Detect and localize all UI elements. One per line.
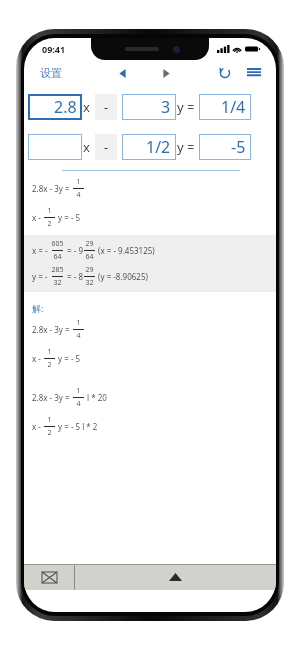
staticText: 09:41 <box>42 43 66 55</box>
staticText: 4 <box>76 399 81 409</box>
staticText: = <box>187 98 195 116</box>
staticText: 2 <box>47 428 52 438</box>
staticText: x - <box>32 421 43 432</box>
staticText: y <box>177 98 184 116</box>
staticText: 2.8x - 3y = <box>32 392 72 403</box>
staticText: 2.8x - 3y = <box>32 324 72 335</box>
button[interactable]: Undo <box>216 64 234 82</box>
staticText: 解: <box>32 302 44 314</box>
staticText: 4 <box>76 331 81 341</box>
staticText: 285 <box>51 265 64 275</box>
staticText: 2 <box>47 219 52 229</box>
staticText: = - 8 <box>65 271 83 282</box>
staticText: y = - <box>32 271 50 282</box>
staticText: 64 <box>53 252 62 262</box>
button[interactable]: Menu <box>244 63 264 83</box>
button[interactable]: 3 <box>122 94 176 120</box>
staticText: 2.8x - 3y = <box>32 183 72 194</box>
staticText: - <box>104 99 108 115</box>
staticText: x = - <box>32 245 50 256</box>
staticText: 2.8 <box>54 96 77 118</box>
staticText: -5 <box>231 136 246 158</box>
staticText: x - <box>32 212 43 223</box>
staticText: x <box>83 138 90 156</box>
button[interactable] <box>28 134 82 160</box>
staticText: 32 <box>53 278 62 288</box>
staticText: 1 <box>47 206 52 216</box>
button[interactable]: Previous <box>113 64 131 82</box>
button[interactable]: Next <box>157 64 175 82</box>
staticText: 4 <box>76 190 81 200</box>
staticText: 1 <box>76 386 81 396</box>
button[interactable]: -5 <box>199 134 251 160</box>
staticText: l * 20 <box>85 392 107 403</box>
staticText: = <box>187 138 195 156</box>
staticText: 1 <box>76 318 81 328</box>
button[interactable]: 1/2 <box>122 134 176 160</box>
staticText: 1/2 <box>146 136 171 158</box>
staticText: y = - 5 <box>56 212 81 223</box>
staticText: - <box>104 139 108 155</box>
staticText: x <box>83 98 90 116</box>
staticText: 1/4 <box>221 96 246 118</box>
button[interactable]: 设置 <box>38 64 64 82</box>
staticText: 32 <box>85 278 94 288</box>
button[interactable]: Scroll up <box>75 564 276 590</box>
staticText: 3 <box>161 96 171 118</box>
staticText: 64 <box>85 252 94 262</box>
staticText: y = - 5 <box>56 353 81 364</box>
staticText: (x = - 9.453125) <box>96 245 155 256</box>
staticText: 1 <box>76 177 81 187</box>
staticText: 29 <box>85 239 94 249</box>
button[interactable]: 1/4 <box>199 94 251 120</box>
staticText: y <box>177 138 184 156</box>
staticText: 2 <box>47 360 52 370</box>
staticText: 605 <box>51 239 64 249</box>
staticText: = - 9 <box>65 245 83 256</box>
staticText: 1 <box>47 415 52 425</box>
button[interactable]: 2.8 <box>28 94 82 120</box>
staticText: (y = -8.90625) <box>96 271 148 282</box>
staticText: 1 <box>47 347 52 357</box>
staticText: y = - 5 l * 2 <box>56 421 98 432</box>
staticText: 29 <box>85 265 94 275</box>
staticText: 设置 <box>40 66 62 80</box>
staticText: x - <box>32 353 43 364</box>
button[interactable]: Mail <box>24 564 74 590</box>
